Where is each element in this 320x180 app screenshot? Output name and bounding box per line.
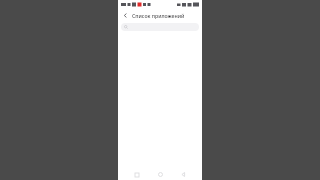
staticText: Список приложений: [132, 12, 185, 19]
button[interactable]: [121, 23, 199, 31]
button[interactable]: Назад: [120, 10, 130, 20]
button[interactable]: Главный экран: [155, 169, 166, 180]
button[interactable]: Обзор: [131, 169, 142, 180]
button[interactable]: Назад: [178, 169, 189, 180]
